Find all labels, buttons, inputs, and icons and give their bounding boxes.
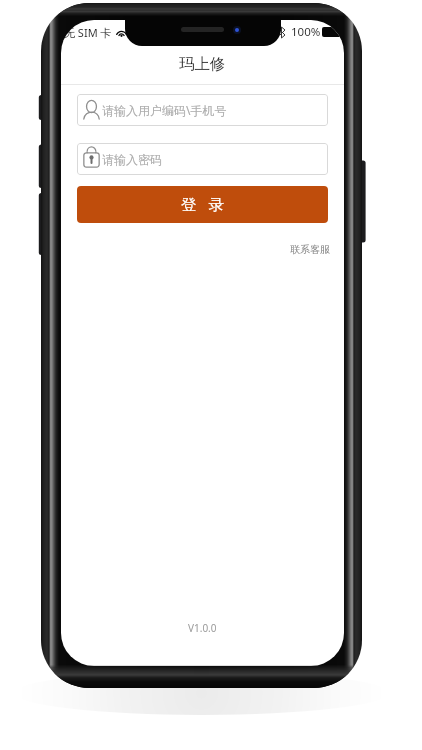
staticText: 登 录 [181,193,225,214]
button[interactable]: 请输入密码 [77,143,328,175]
staticText: 无 SIM 卡 [64,25,112,40]
staticText: V1.0.0 [188,621,217,635]
button[interactable]: 请输入用户编码\手机号 [77,94,328,126]
staticText: 玛上修 [179,54,226,74]
staticText: 100% [291,24,321,40]
button[interactable]: 登 录 [77,186,328,223]
staticText: 联系客服 [290,243,330,256]
staticText: 请输入密码 [102,152,162,167]
button[interactable]: 联系客服 [289,241,331,258]
staticText: 请输入用户编码\手机号 [102,102,227,118]
